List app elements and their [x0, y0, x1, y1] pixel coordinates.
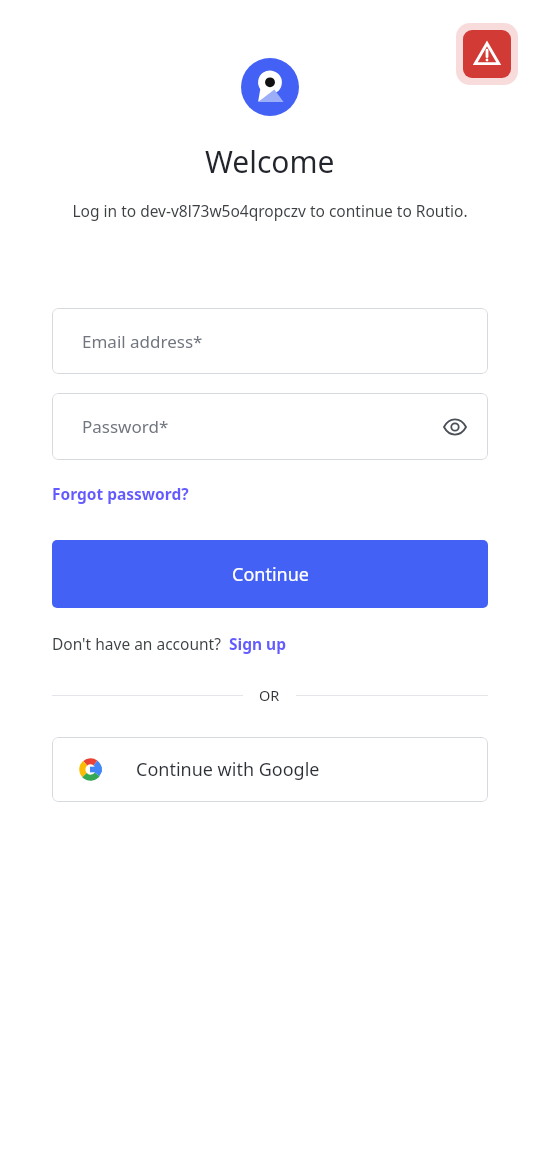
button[interactable]: Forgot password?	[52, 481, 189, 506]
button[interactable]: Sign up	[229, 633, 286, 654]
staticText: Continue with Google	[136, 757, 320, 782]
staticText: Password*	[82, 415, 169, 438]
staticText: Forgot password?	[52, 483, 189, 504]
staticText: Log in to dev-v8l73w5o4qropczv to contin…	[52, 200, 488, 221]
button[interactable]: Continue	[52, 540, 488, 608]
staticText: Welcome	[205, 141, 335, 182]
staticText: OR	[259, 685, 280, 705]
button[interactable]: Show password	[439, 411, 471, 443]
button[interactable]: Password*	[52, 393, 488, 460]
staticText: Email address*	[82, 330, 203, 353]
staticText: Don't have an account?	[52, 633, 221, 654]
button[interactable]: Error	[456, 23, 518, 85]
staticText: Continue	[232, 562, 309, 587]
button[interactable]: Email address*	[52, 308, 488, 374]
button[interactable]: Continue with Google	[52, 737, 488, 802]
staticText: Sign up	[229, 633, 286, 654]
